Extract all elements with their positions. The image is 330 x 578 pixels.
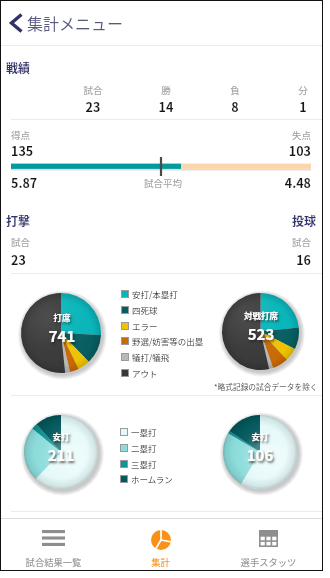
- staticText: 14: [136, 97, 196, 115]
- staticText: 8: [205, 97, 265, 115]
- button[interactable]: 試合結果一覧: [0, 519, 107, 570]
- staticText: ホームラン: [131, 473, 173, 485]
- staticText: 安打: [210, 430, 310, 442]
- staticText: 失点: [251, 128, 311, 142]
- staticText: 23: [11, 250, 26, 268]
- button[interactable]: 二塁打: [120, 442, 157, 455]
- staticText: 打撃: [6, 212, 31, 229]
- staticText: アウト: [132, 367, 158, 379]
- staticText: 二塁打: [131, 442, 157, 454]
- button[interactable]: 安打/本塁打: [121, 288, 178, 301]
- staticText: 一塁打: [131, 426, 157, 438]
- button[interactable]: Back: [3, 7, 29, 38]
- staticText: 135: [11, 141, 34, 159]
- staticText: 対戦打席: [211, 309, 311, 321]
- staticText: 試合: [63, 83, 123, 97]
- button[interactable]: 選手スタッツ: [215, 519, 322, 570]
- staticText: 523: [211, 323, 311, 345]
- staticText: 試合結果一覧: [0, 555, 107, 568]
- button[interactable]: 犠打/犠飛: [121, 351, 170, 364]
- button[interactable]: 野選/妨害等の出塁: [121, 335, 204, 348]
- staticText: 勝: [136, 83, 196, 97]
- staticText: 得点: [11, 128, 31, 142]
- staticText: 犠打/犠飛: [132, 351, 170, 363]
- staticText: 選手スタッツ: [215, 555, 322, 568]
- staticText: エラー: [132, 320, 158, 332]
- staticText: 1: [273, 97, 330, 115]
- button[interactable]: エラー: [121, 320, 158, 333]
- staticText: 23: [63, 97, 123, 115]
- button[interactable]: 三塁打: [120, 458, 157, 471]
- staticText: 106: [210, 444, 310, 466]
- button[interactable]: 一塁打: [120, 426, 157, 439]
- button[interactable]: アウト: [121, 367, 158, 380]
- staticText: 集計: [107, 555, 214, 568]
- staticText: 16: [251, 250, 311, 268]
- staticText: 集計メニュー: [27, 11, 124, 34]
- staticText: 103: [251, 141, 311, 159]
- staticText: 打席: [12, 311, 112, 323]
- staticText: 安打: [11, 430, 111, 442]
- staticText: 4.48: [251, 173, 311, 191]
- staticText: 741: [12, 325, 112, 347]
- staticText: 分: [273, 83, 330, 97]
- staticText: 投球: [256, 212, 316, 229]
- staticText: 試合平均: [128, 176, 198, 190]
- staticText: 5.87: [11, 173, 38, 191]
- staticText: 戦績: [6, 59, 31, 76]
- staticText: 試合: [251, 235, 311, 249]
- button[interactable]: ホームラン: [120, 473, 173, 486]
- staticText: 211: [11, 444, 111, 466]
- staticText: *略式記録の試合データを除く: [214, 381, 318, 392]
- staticText: 安打/本塁打: [132, 288, 178, 300]
- button[interactable]: 集計: [107, 519, 214, 570]
- staticText: 三塁打: [131, 458, 157, 470]
- staticText: 試合: [11, 235, 31, 249]
- staticText: 野選/妨害等の出塁: [132, 335, 204, 347]
- staticText: 四死球: [132, 304, 158, 316]
- button[interactable]: 四死球: [121, 304, 158, 317]
- staticText: 負: [205, 83, 265, 97]
